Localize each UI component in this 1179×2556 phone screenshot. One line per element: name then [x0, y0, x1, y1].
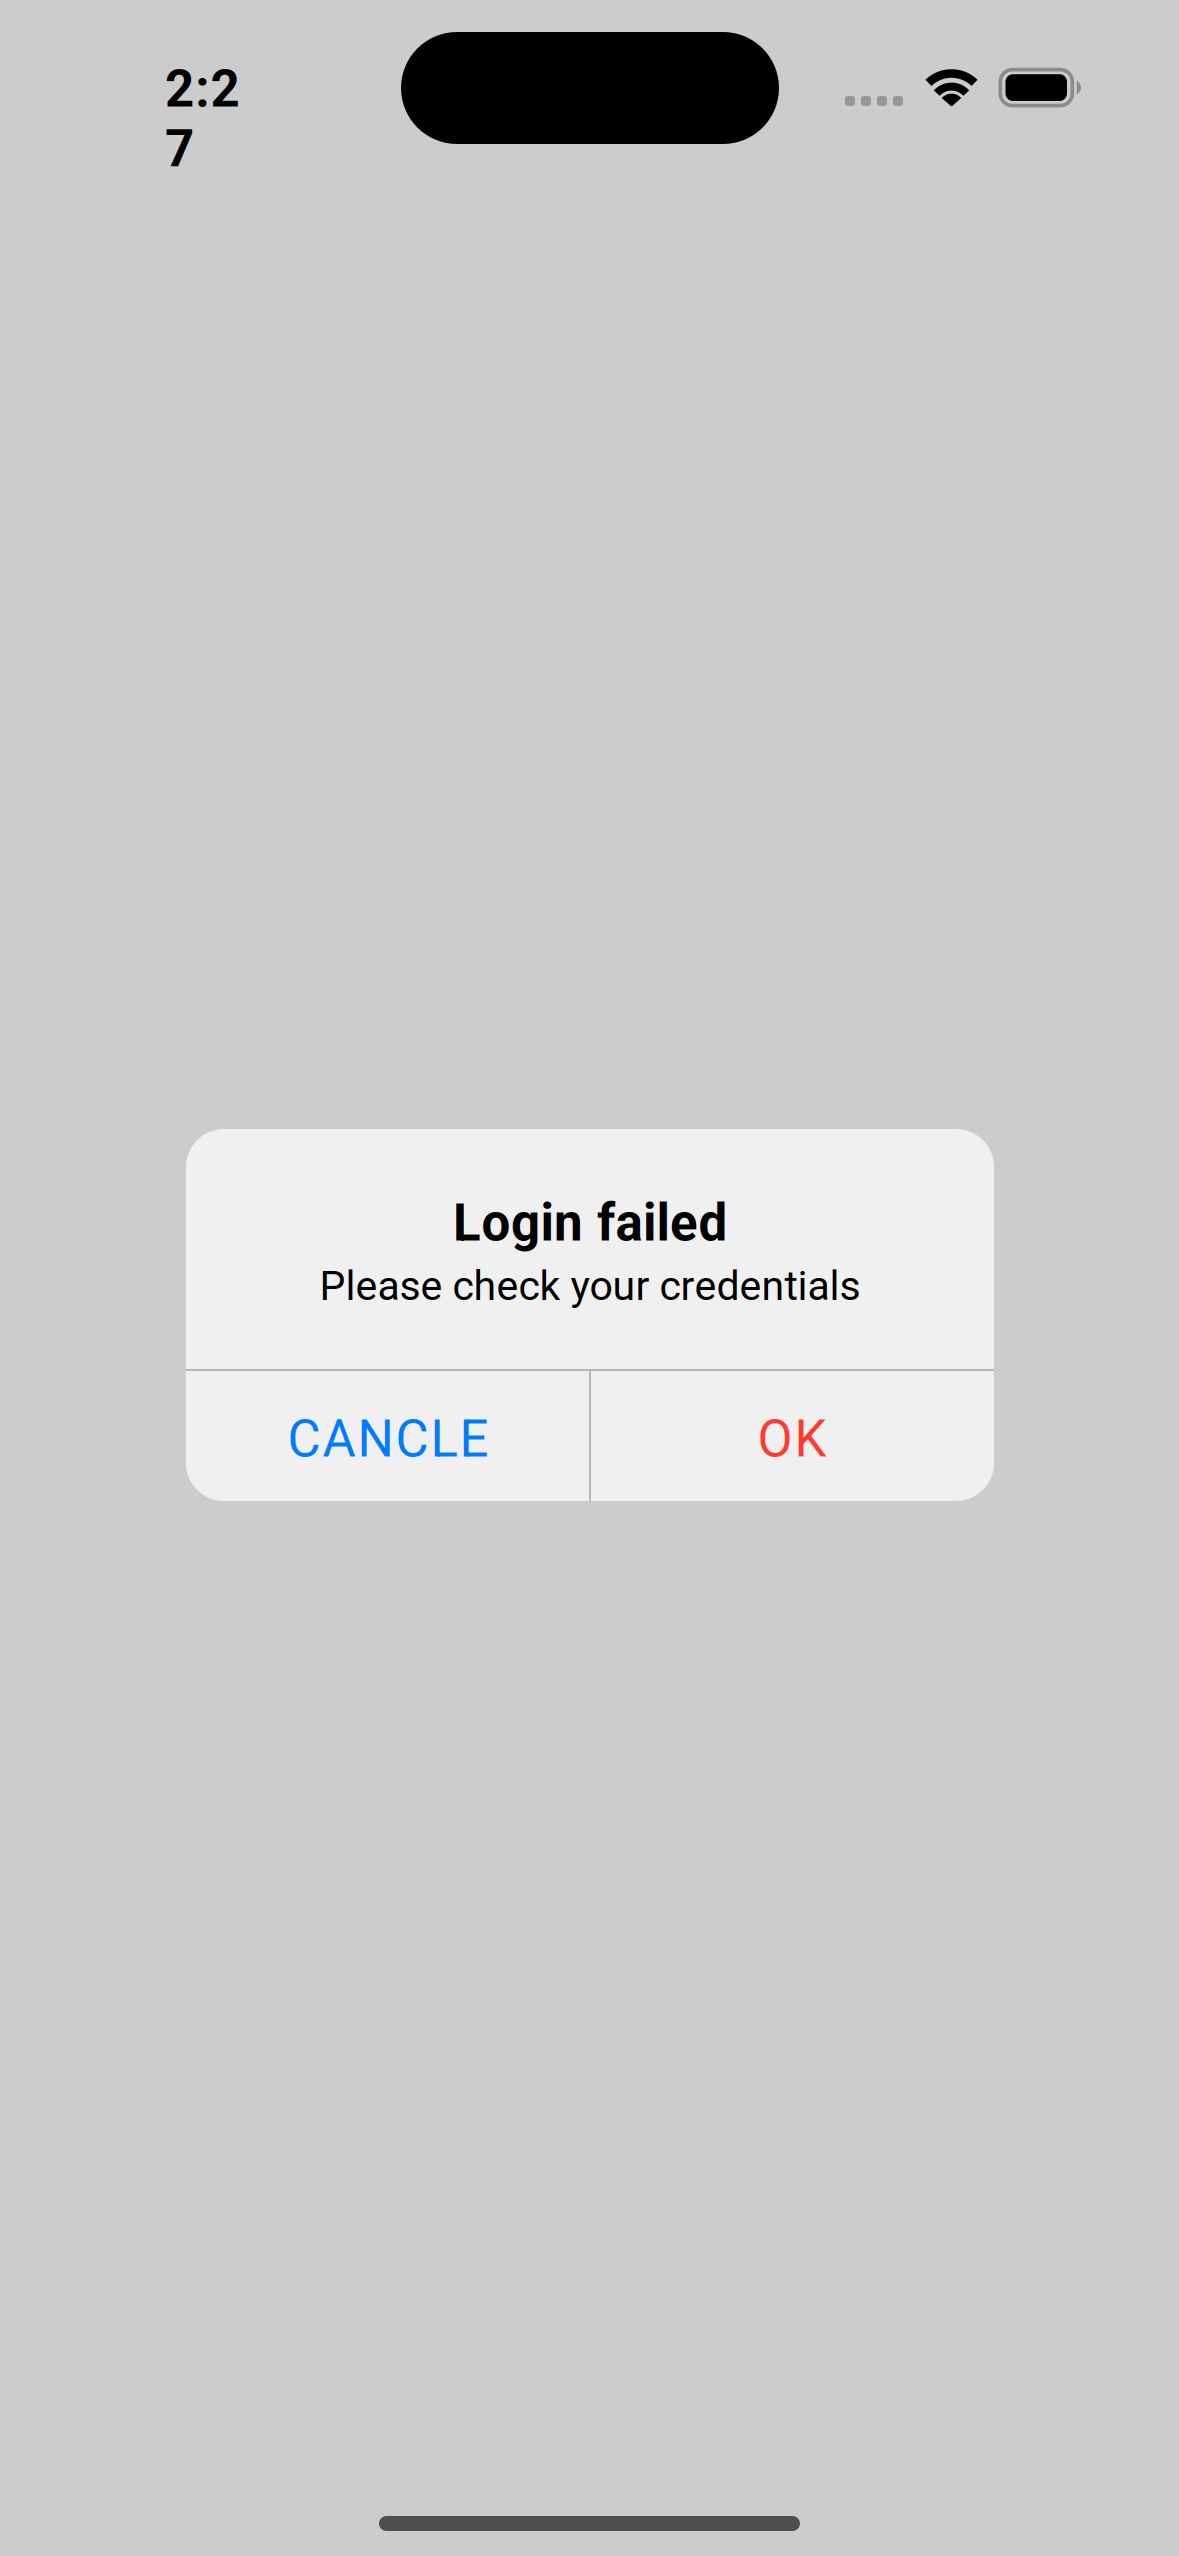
staticText: Please check your credentials: [319, 1262, 860, 1310]
button[interactable]: OK: [590, 1373, 994, 1505]
button[interactable]: CANCLE: [186, 1373, 590, 1505]
staticText: CANCLE: [287, 1409, 488, 1469]
staticText: 2:27: [165, 59, 270, 119]
staticText: OK: [757, 1409, 826, 1469]
staticText: Login failed: [453, 1193, 728, 1253]
